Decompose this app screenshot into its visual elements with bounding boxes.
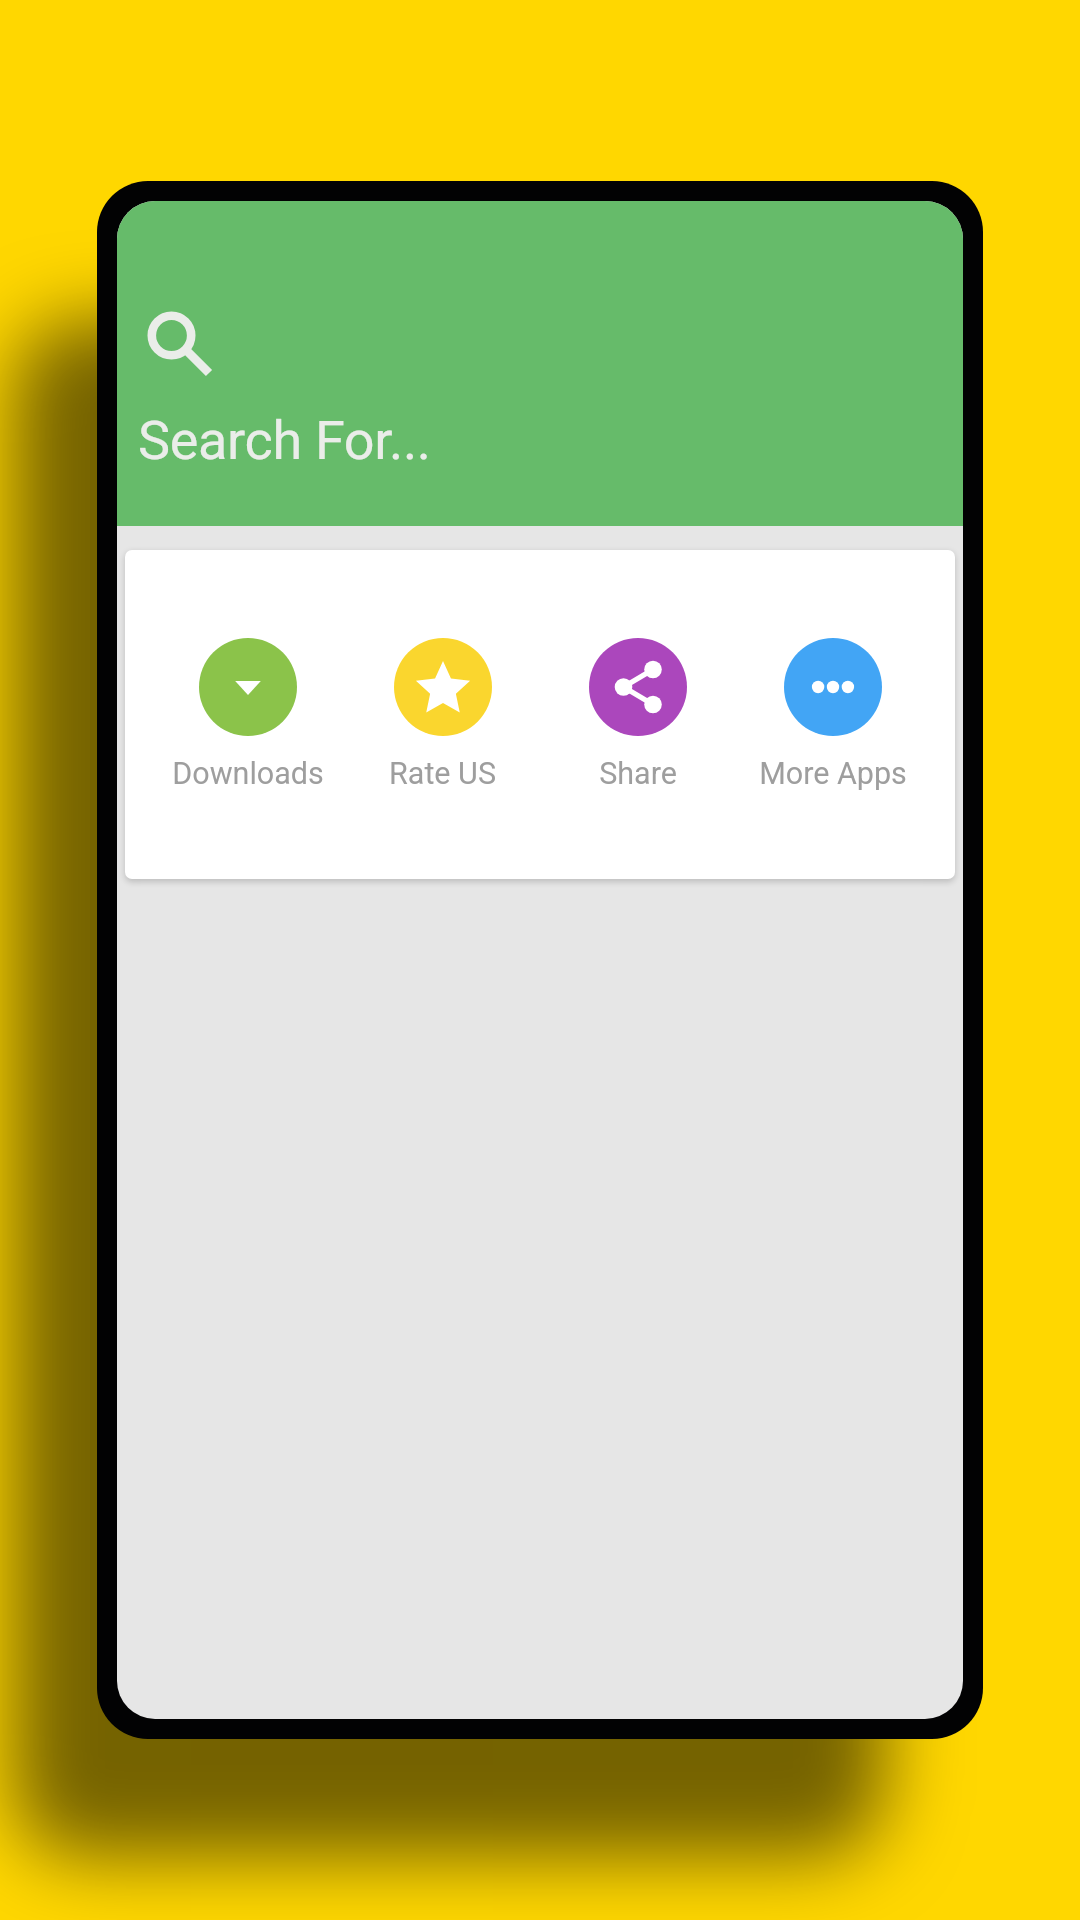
button[interactable]: More Apps bbox=[735, 638, 930, 792]
staticText: More Apps bbox=[759, 756, 907, 792]
staticText: Rate US bbox=[389, 756, 496, 792]
button[interactable]: Search bbox=[141, 305, 241, 385]
staticText: Share bbox=[599, 756, 677, 792]
button[interactable]: Share bbox=[540, 638, 735, 792]
button[interactable]: Rate US bbox=[345, 638, 540, 792]
staticText: Search For... bbox=[138, 409, 431, 472]
staticText: Downloads bbox=[172, 756, 324, 792]
button[interactable]: Search bbox=[117, 201, 963, 526]
button[interactable]: Downloads bbox=[150, 638, 345, 792]
